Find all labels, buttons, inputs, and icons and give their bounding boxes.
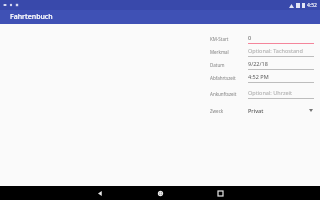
staticText: 4:52 PM xyxy=(248,73,269,80)
other: Auswahl öffnen xyxy=(307,107,314,114)
staticText: Ankunftszeit xyxy=(210,91,244,97)
staticText: 4:52 xyxy=(307,2,317,9)
button[interactable]: KM-Start xyxy=(210,34,314,44)
button[interactable]: Zweck xyxy=(210,107,314,114)
staticText: Privat xyxy=(248,107,307,114)
staticText: 9/22/18 xyxy=(248,60,268,67)
staticText: Optional: Tachostand Fahrt xyxy=(248,47,314,54)
button[interactable]: Back xyxy=(70,186,130,200)
staticText: Fahrtenbuch xyxy=(10,12,53,22)
button[interactable]: Abfahrtszeit xyxy=(210,73,314,83)
staticText: KM-Start xyxy=(210,36,244,42)
button[interactable]: Merkmal xyxy=(210,47,314,57)
staticText: Datum xyxy=(210,62,244,68)
button[interactable]: Recent apps xyxy=(190,186,250,200)
button[interactable]: Ankunftszeit xyxy=(210,89,314,99)
staticText: Merkmal xyxy=(210,49,244,55)
staticText: Optional: Uhrzeit xyxy=(248,89,293,96)
staticText: Abfahrtszeit xyxy=(210,75,244,81)
staticText: Zweck xyxy=(210,108,244,114)
staticText: 0 xyxy=(248,34,252,41)
button[interactable]: Home xyxy=(130,186,190,200)
button[interactable]: Datum xyxy=(210,60,314,70)
button[interactable]: Fahrtenbuch xyxy=(0,10,320,24)
